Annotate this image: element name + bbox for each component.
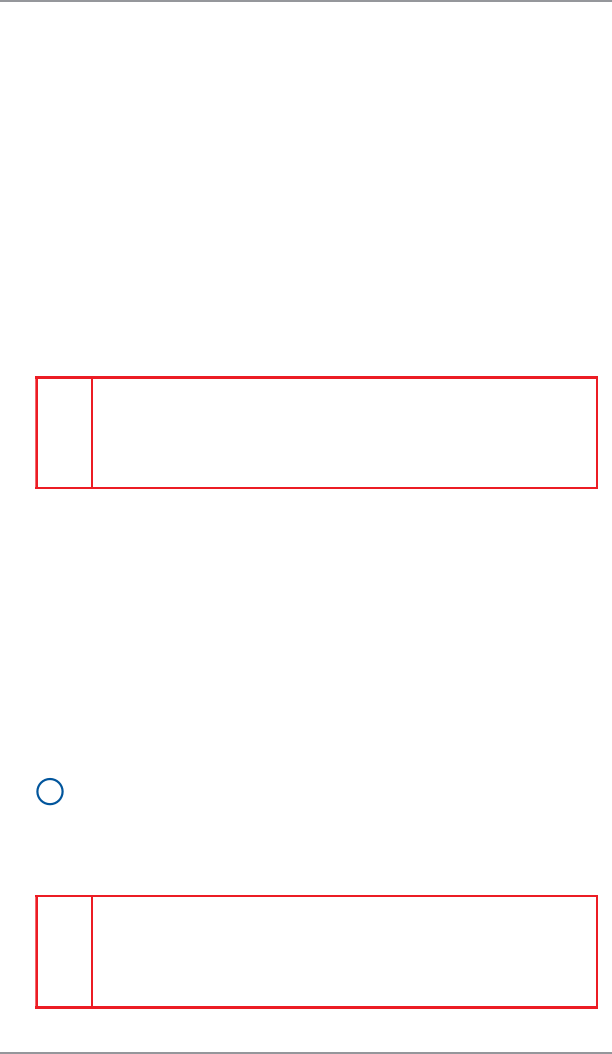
button[interactable]: Placeholder card xyxy=(35,376,598,489)
button[interactable]: Placeholder card xyxy=(35,895,598,1009)
button[interactable]: Select xyxy=(37,779,63,804)
